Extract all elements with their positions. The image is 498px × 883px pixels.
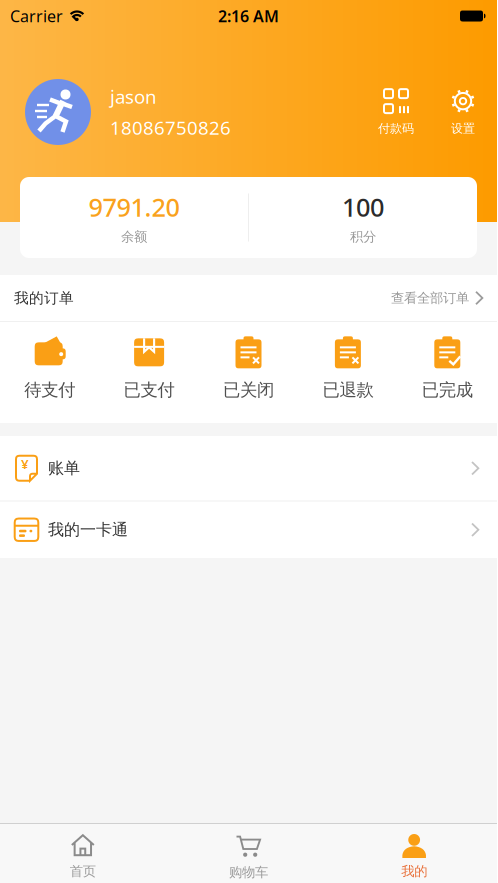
staticText: jason	[110, 84, 157, 109]
button[interactable]: 100	[249, 190, 477, 245]
button[interactable]: 查看全部订单	[391, 290, 484, 306]
staticText: 已退款	[322, 379, 373, 401]
staticText: 我的	[401, 863, 427, 879]
staticText: 我的一卡通	[48, 520, 128, 540]
button[interactable]: 我的一卡通	[0, 501, 497, 558]
button[interactable]: 已关闭	[199, 332, 298, 413]
staticText: 我的订单	[14, 289, 74, 307]
button[interactable]: 已完成	[398, 332, 497, 413]
button[interactable]: 9791.20	[20, 190, 248, 245]
staticText: 购物车	[229, 864, 268, 880]
staticText: 付款码	[378, 121, 414, 136]
staticText: 待支付	[24, 379, 75, 401]
staticText: 9791.20	[88, 190, 179, 224]
button[interactable]: 已支付	[99, 332, 199, 413]
button[interactable]: 付款码	[378, 88, 414, 136]
button[interactable]: 购物车	[166, 834, 331, 880]
staticText: 查看全部订单	[391, 290, 469, 306]
button[interactable]: ¥	[0, 436, 497, 500]
button[interactable]: 首页	[0, 834, 166, 879]
staticText: ¥	[21, 455, 29, 473]
staticText: 100	[342, 190, 384, 224]
staticText: 积分	[350, 229, 376, 245]
button[interactable]: 我的	[331, 834, 497, 879]
staticText: 账单	[48, 458, 80, 478]
staticText: Carrier	[10, 5, 63, 27]
button[interactable]: 待支付	[0, 332, 99, 413]
staticText: 首页	[70, 863, 96, 879]
staticText: 已完成	[422, 379, 473, 401]
button[interactable]: 已退款	[298, 332, 398, 413]
staticText: 余额	[121, 229, 147, 245]
staticText: 2:16 AM	[218, 5, 279, 27]
staticText: 已支付	[124, 379, 175, 401]
button[interactable]: 设置	[450, 88, 476, 136]
staticText: 设置	[451, 121, 475, 136]
staticText: 18086750826	[110, 115, 231, 140]
staticText: 已关闭	[223, 379, 274, 401]
